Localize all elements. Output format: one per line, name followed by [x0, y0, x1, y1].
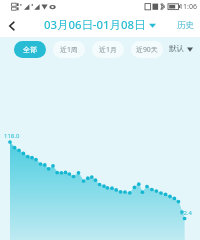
staticText: 92.4	[180, 209, 192, 217]
staticText: 历史	[177, 20, 195, 31]
button[interactable]: 默认	[169, 44, 193, 54]
staticText: 全部	[23, 45, 37, 54]
staticText: 03月06日-01月08日	[44, 17, 146, 33]
staticText: 默认	[169, 44, 185, 54]
staticText: 118.0	[4, 132, 20, 140]
button[interactable]: 历史	[177, 20, 195, 31]
staticText: 近1月	[99, 45, 117, 54]
button[interactable]: 近1周	[53, 41, 85, 58]
button[interactable]: 全部	[14, 41, 46, 58]
staticText: 11:06	[179, 2, 197, 12]
button[interactable]: 近1月	[92, 41, 124, 58]
button[interactable]: 03月06日-01月08日	[44, 17, 156, 33]
staticText: 近90天	[136, 45, 158, 54]
button[interactable]: Back	[4, 18, 20, 34]
staticText: 近1周	[60, 45, 78, 54]
button[interactable]: 近90天	[131, 41, 163, 58]
